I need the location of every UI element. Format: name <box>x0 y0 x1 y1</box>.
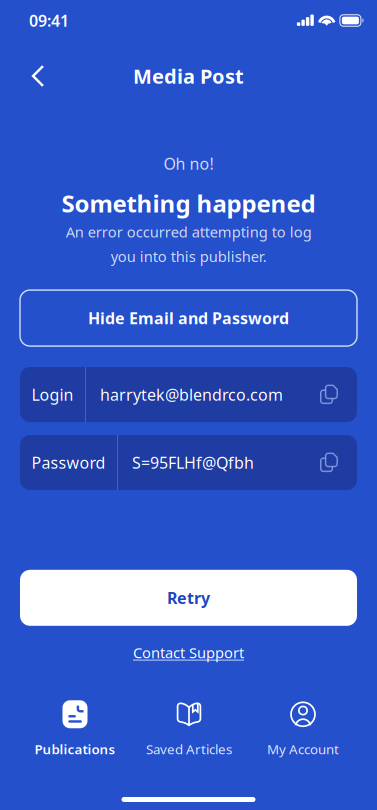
staticText: Retry <box>167 587 210 608</box>
button[interactable]: Contact Support <box>125 640 252 665</box>
button[interactable]: Back <box>16 54 60 98</box>
button[interactable]: Retry <box>20 570 357 626</box>
button[interactable]: Copy Password <box>310 441 348 485</box>
staticText: Something happened <box>61 187 315 219</box>
button[interactable]: Publications <box>18 695 132 763</box>
button[interactable]: Copy Login <box>310 373 348 417</box>
staticText: Password <box>31 452 105 473</box>
staticText: Saved Articles <box>146 740 232 758</box>
staticText: Oh no! <box>163 153 213 174</box>
staticText: Contact Support <box>133 643 244 662</box>
staticText: An error occurred attempting to log you … <box>65 222 311 266</box>
staticText: Hide Email and Password <box>88 307 289 329</box>
staticText: 09:41 <box>29 10 69 31</box>
button[interactable]: Saved Articles <box>132 695 246 763</box>
staticText: S=95FLHf@Qfbh <box>132 452 254 473</box>
button[interactable]: Hide Email and Password <box>20 290 357 346</box>
staticText: Media Post <box>133 63 244 89</box>
staticText: harrytek@blendrco.com <box>100 384 283 405</box>
staticText: My Account <box>267 740 339 758</box>
button[interactable]: My Account <box>246 695 360 763</box>
staticText: Publications <box>34 740 115 758</box>
staticText: Login <box>31 384 73 405</box>
